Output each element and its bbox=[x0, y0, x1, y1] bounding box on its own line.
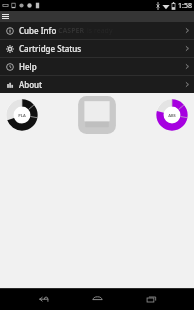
button[interactable]: Help bbox=[0, 58, 194, 75]
button[interactable]: About bbox=[0, 76, 194, 93]
staticText: ABS bbox=[168, 113, 176, 118]
staticText: CASPER bbox=[58, 26, 85, 36]
staticText: PLA bbox=[18, 113, 26, 118]
button[interactable]: Recent apps bbox=[138, 288, 164, 310]
button[interactable]: Back bbox=[30, 288, 56, 310]
staticText: 1:58 bbox=[178, 1, 192, 11]
button[interactable]: PLA cartridge 70 percent bbox=[4, 97, 40, 133]
staticText: About bbox=[19, 79, 43, 90]
button[interactable]: Printer bbox=[75, 93, 119, 137]
button[interactable]: Home bbox=[84, 288, 110, 310]
staticText: Help bbox=[19, 61, 37, 72]
staticText: Cartridge Status bbox=[19, 43, 82, 54]
button[interactable]: ABS cartridge 80 percent bbox=[154, 97, 190, 133]
staticText: Cube Info bbox=[19, 25, 57, 36]
button[interactable]: Open navigation drawer bbox=[0, 11, 11, 22]
button[interactable]: Cube Info bbox=[0, 22, 194, 39]
button[interactable]: Cartridge Status bbox=[0, 40, 194, 57]
